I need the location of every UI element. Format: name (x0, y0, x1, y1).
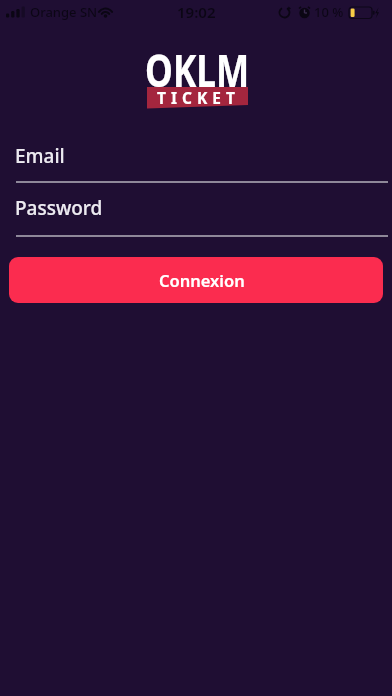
staticText: OKLM (145, 40, 250, 100)
staticText: Password (15, 195, 103, 221)
button[interactable]: Connexion (9, 257, 383, 303)
staticText: 19:02 (177, 2, 216, 22)
button[interactable]: Password (15, 195, 388, 238)
staticText: Connexion (159, 269, 245, 291)
staticText: Orange SN (30, 3, 98, 21)
button[interactable]: Email (15, 143, 388, 184)
staticText: Email (15, 143, 65, 169)
staticText: 10 % (314, 3, 344, 21)
staticText: TICKET (157, 87, 240, 108)
